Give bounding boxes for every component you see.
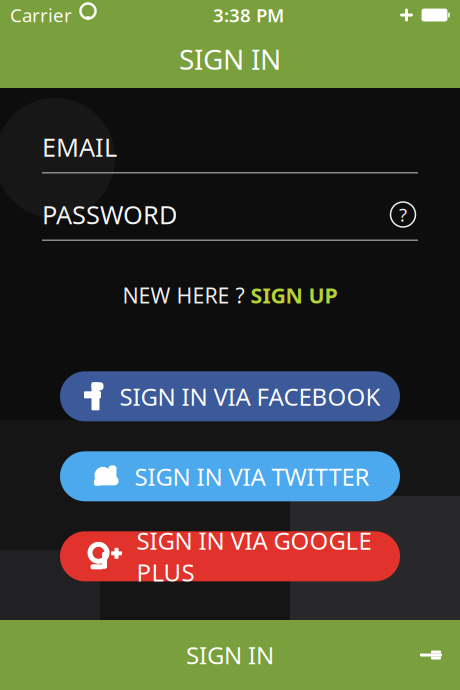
staticText: Carrier (10, 3, 72, 27)
button[interactable]: NEW HERE ? (112, 275, 347, 315)
button[interactable]: SIGN IN VIA GOOGLE PLUS (60, 531, 400, 581)
button[interactable]: SIGN IN VIA FACEBOOK (60, 371, 400, 421)
staticText: SIGN IN VIA TWITTER (134, 460, 369, 492)
staticText: SIGN UP (250, 281, 337, 309)
staticText: PASSWORD (42, 198, 177, 231)
staticText: SIGN IN VIA FACEBOOK (119, 380, 380, 412)
button[interactable]: SIGN IN VIA TWITTER (60, 451, 400, 501)
staticText: SIGN IN (179, 40, 281, 78)
button[interactable]: SIGN IN (0, 620, 460, 690)
button[interactable]: Password help (388, 199, 418, 229)
staticText: ? (399, 202, 407, 227)
staticText: SIGN IN VIA GOOGLE PLUS (136, 524, 371, 588)
staticText: NEW HERE ? (122, 281, 244, 309)
staticText: 3:38 PM (213, 3, 284, 27)
staticText: EMAIL (42, 130, 117, 164)
staticText: SIGN IN (186, 639, 274, 671)
